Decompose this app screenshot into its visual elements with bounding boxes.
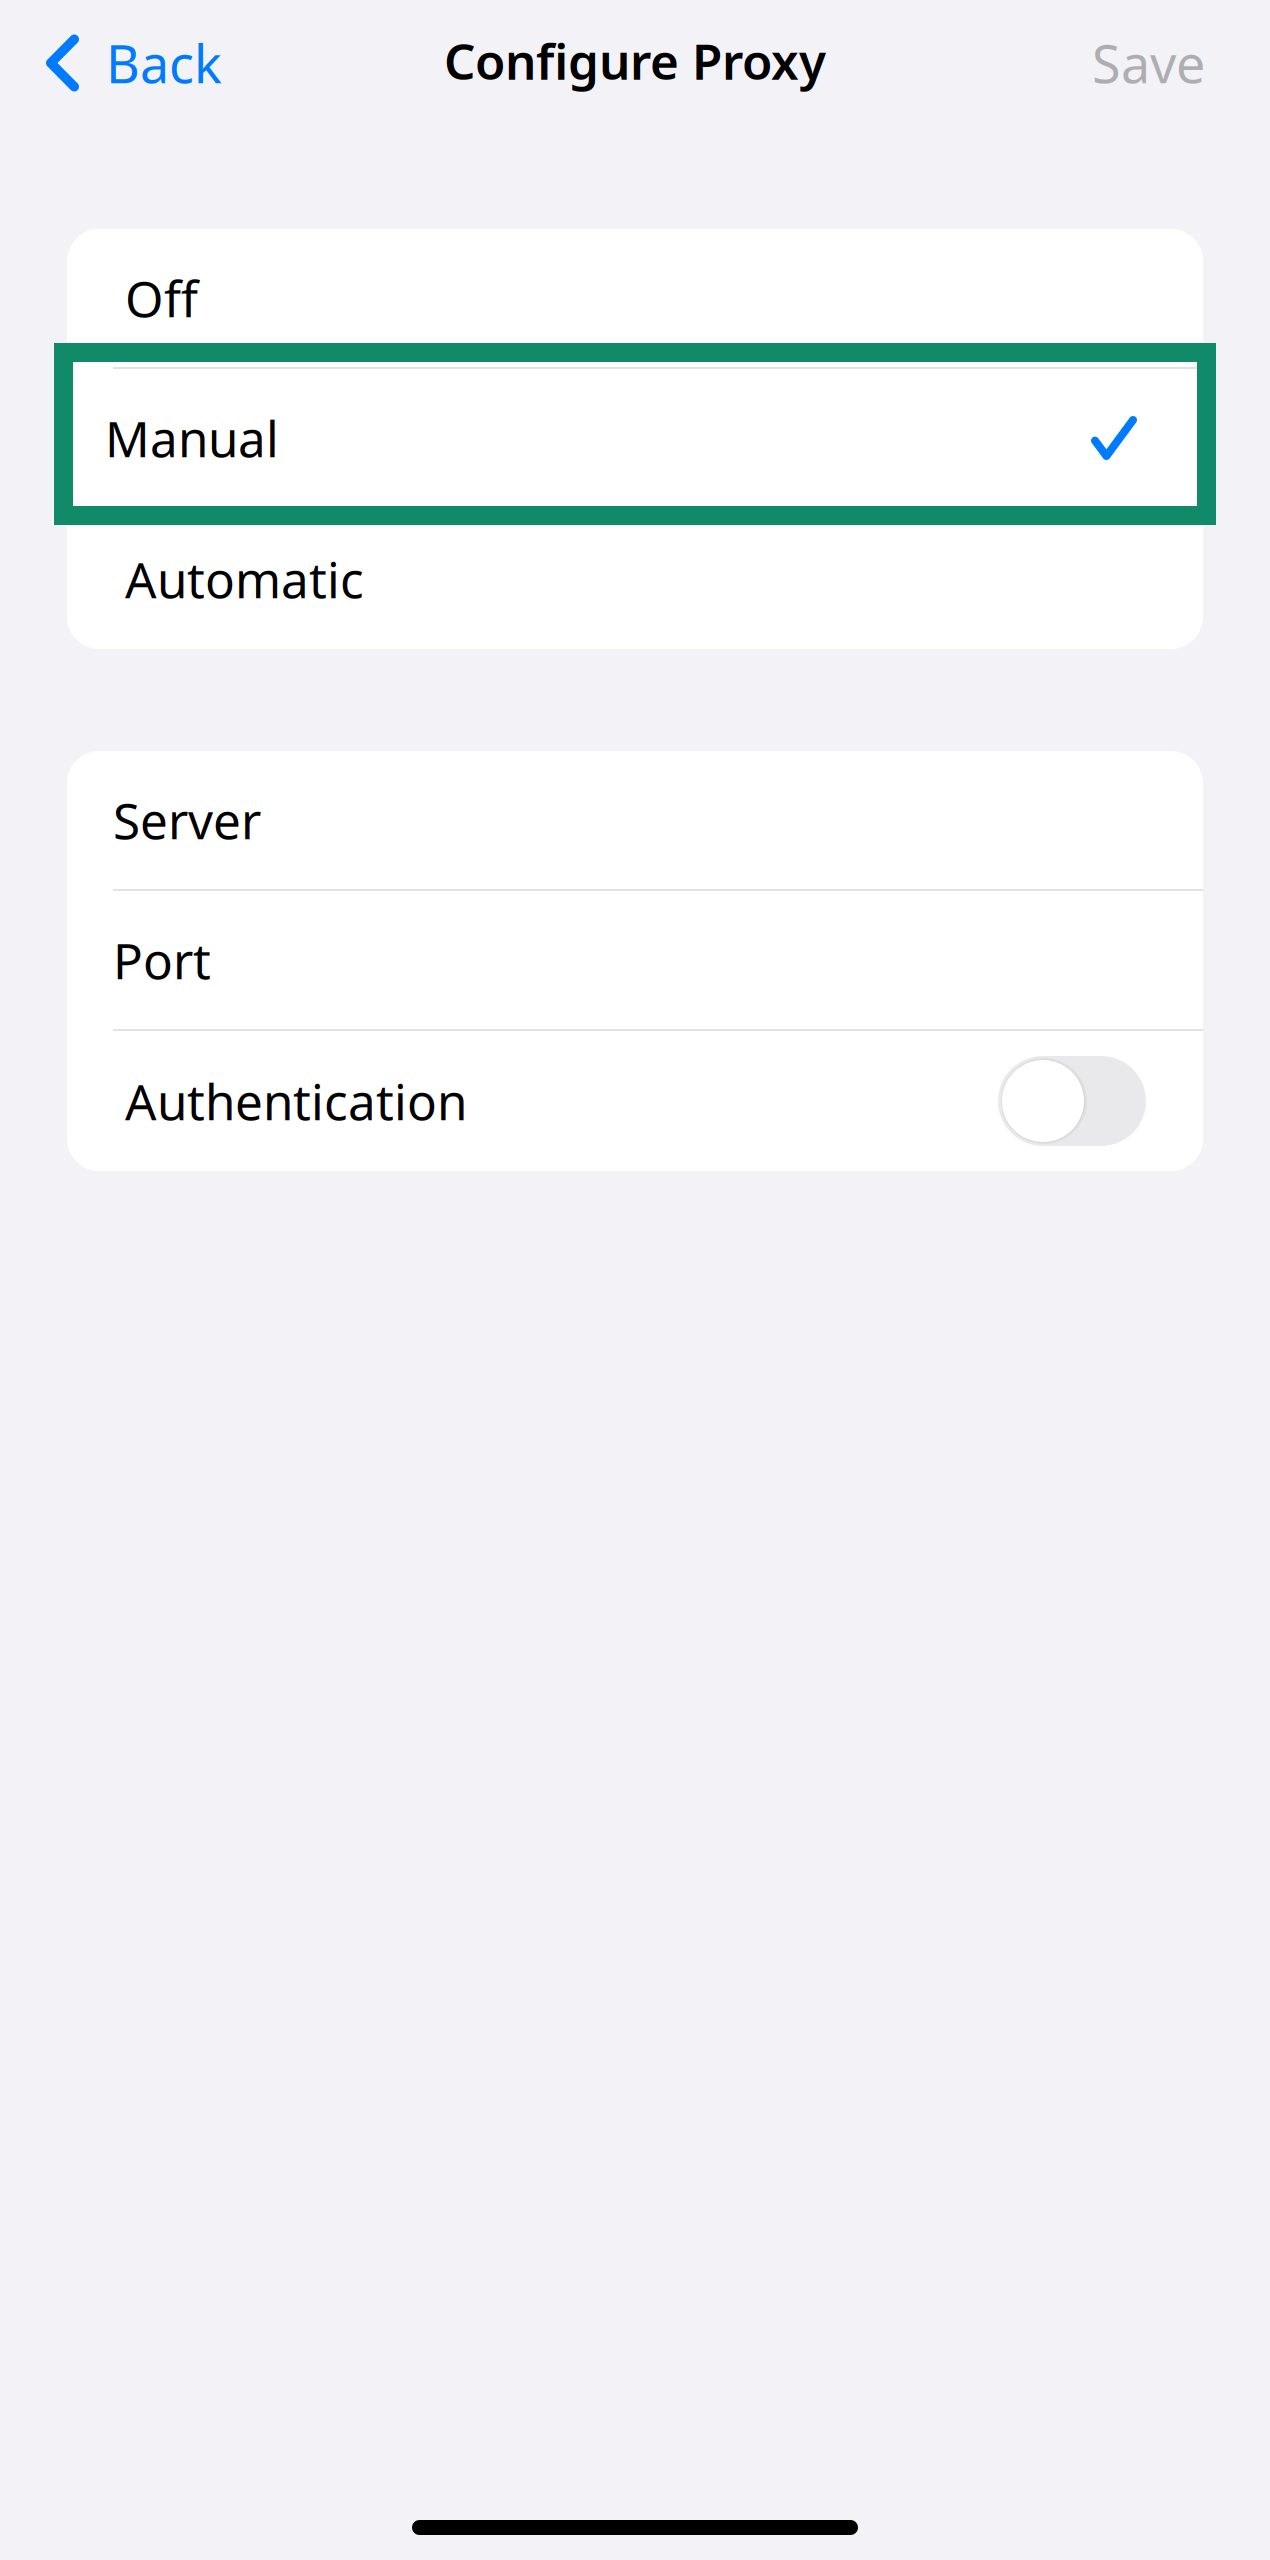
staticText: Automatic <box>125 546 364 612</box>
staticText: Port <box>113 927 211 993</box>
button[interactable]: Port <box>67 891 1203 1031</box>
button[interactable]: Save <box>1068 3 1270 123</box>
staticText: Server <box>113 787 261 853</box>
button[interactable]: Back <box>0 3 246 123</box>
staticText: Authentication <box>125 1068 467 1134</box>
button[interactable]: Manual <box>67 369 1203 509</box>
button[interactable]: Authentication <box>998 1031 1203 1171</box>
button[interactable]: Server <box>67 751 1203 891</box>
staticText: Back <box>106 28 222 98</box>
staticText: Off <box>125 265 198 331</box>
staticText: Configure Proxy <box>444 28 826 93</box>
button[interactable]: Automatic <box>67 509 1203 649</box>
staticText: Manual <box>105 405 279 471</box>
button[interactable]: Off <box>67 229 1203 369</box>
staticText: Save <box>1092 28 1205 98</box>
